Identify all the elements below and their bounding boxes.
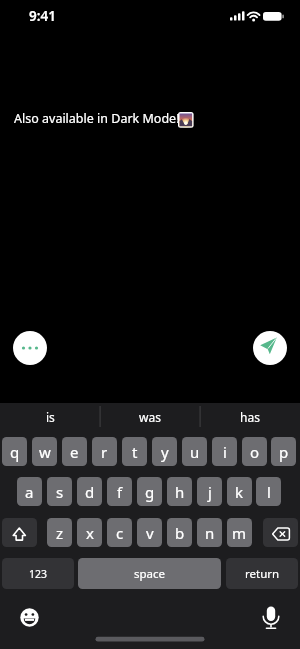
button[interactable]: space [78, 558, 221, 589]
button[interactable]: l [256, 477, 281, 506]
staticText: i [223, 442, 227, 462]
staticText: z [56, 523, 64, 543]
staticText: e [70, 442, 79, 462]
staticText: g [145, 482, 155, 502]
staticText: s [56, 482, 64, 502]
button[interactable] [2, 518, 37, 547]
button[interactable]: p [271, 437, 296, 466]
button[interactable]: u [182, 437, 207, 466]
button[interactable]: w [32, 437, 57, 466]
button[interactable]: o [242, 437, 267, 466]
staticText: j [208, 482, 212, 502]
staticText: was [139, 409, 161, 425]
button[interactable]: r [92, 437, 117, 466]
button[interactable]: c [107, 518, 132, 547]
button[interactable] [13, 331, 47, 365]
button[interactable]: has [200, 401, 300, 432]
staticText: t [132, 442, 138, 462]
staticText: b [175, 523, 185, 543]
staticText: v [146, 523, 154, 543]
button[interactable]: y [152, 437, 177, 466]
button[interactable]: i [212, 437, 237, 466]
staticText: m [232, 523, 247, 543]
button[interactable]: s [47, 477, 72, 506]
button[interactable]: v [137, 518, 162, 547]
staticText: o [250, 442, 260, 462]
button[interactable]: a [17, 477, 42, 506]
button[interactable]: b [167, 518, 192, 547]
button[interactable]: d [77, 477, 102, 506]
button[interactable]: z [47, 518, 72, 547]
button[interactable]: m [227, 518, 252, 547]
button[interactable]: q [2, 437, 27, 466]
button[interactable]: n [197, 518, 222, 547]
staticText: f [117, 482, 123, 502]
staticText: n [205, 523, 215, 543]
staticText: d [85, 482, 95, 502]
staticText: 9:41 [29, 7, 56, 25]
button[interactable]: t [122, 437, 147, 466]
staticText: p [279, 442, 289, 462]
staticText: c [116, 523, 124, 543]
staticText: k [235, 482, 244, 502]
staticText: w [39, 442, 51, 462]
staticText: Also available in Dark Mode! [14, 110, 180, 127]
staticText: has [240, 409, 260, 425]
staticText: l [267, 482, 271, 502]
button[interactable]: f [107, 477, 132, 506]
button[interactable] [253, 331, 287, 365]
button[interactable]: x [77, 518, 102, 547]
staticText: h [175, 482, 185, 502]
staticText: space [134, 566, 166, 582]
staticText: u [190, 442, 200, 462]
button[interactable] [16, 604, 43, 631]
button[interactable]: is [0, 401, 100, 432]
button[interactable] [263, 518, 298, 547]
button[interactable]: h [167, 477, 192, 506]
button[interactable]: k [227, 477, 252, 506]
button[interactable]: 123 [2, 558, 74, 589]
staticText: q [10, 442, 20, 462]
button[interactable] [258, 602, 285, 632]
button[interactable]: e [62, 437, 87, 466]
button[interactable]: j [197, 477, 222, 506]
staticText: return [245, 566, 280, 582]
staticText: y [161, 442, 169, 462]
button[interactable]: g [137, 477, 162, 506]
staticText: r [101, 442, 108, 462]
button[interactable]: return [226, 558, 298, 589]
staticText: 123 [29, 567, 48, 581]
button[interactable]: was [100, 401, 200, 432]
staticText: x [86, 523, 94, 543]
staticText: a [25, 482, 34, 502]
staticText: is [46, 409, 55, 425]
